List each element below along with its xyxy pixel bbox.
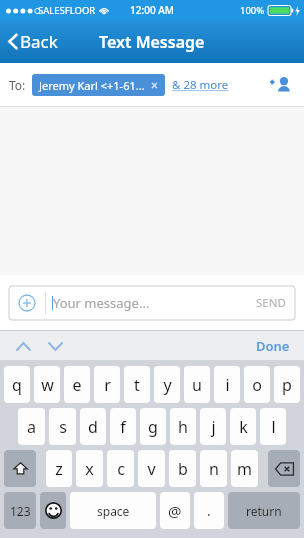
button[interactable]: Back — [0, 24, 68, 59]
button[interactable]: return — [228, 492, 300, 529]
button[interactable]: m — [231, 450, 258, 487]
button[interactable]: x — [76, 450, 103, 487]
staticText: h — [178, 416, 188, 438]
staticText: b — [178, 458, 188, 480]
staticText: y — [163, 374, 172, 396]
staticText: r — [104, 374, 111, 396]
staticText: o — [252, 374, 262, 396]
button[interactable]: Add recipient — [265, 70, 295, 100]
staticText: Back — [20, 30, 58, 53]
button[interactable]: l — [260, 408, 286, 445]
button[interactable]: & 28 more — [172, 72, 229, 98]
button[interactable]: e — [64, 366, 90, 403]
staticText: return — [246, 503, 282, 519]
staticText: SEND — [256, 295, 286, 311]
staticText: d — [88, 416, 98, 438]
button[interactable]: Done — [242, 332, 304, 360]
button[interactable]: i — [214, 366, 240, 403]
staticText: 12:00 AM — [130, 3, 174, 17]
staticText: l — [271, 416, 276, 438]
button[interactable]: s — [49, 408, 76, 445]
staticText: w — [41, 374, 54, 396]
staticText: k — [239, 416, 248, 438]
button[interactable]: o — [244, 366, 270, 403]
staticText: f — [120, 416, 126, 438]
staticText: . — [207, 501, 211, 520]
button[interactable]: Shift — [4, 450, 36, 487]
button[interactable]: y — [154, 366, 180, 403]
button[interactable]: Jeremy Karl <+1-61... — [32, 74, 165, 96]
staticText: To: — [9, 77, 26, 93]
staticText: 100% — [240, 4, 265, 17]
button[interactable]: p — [274, 366, 300, 403]
button[interactable]: Backspace — [268, 450, 300, 487]
staticText: & 28 more — [172, 77, 229, 93]
button[interactable]: q — [4, 366, 30, 403]
staticText: p — [282, 374, 292, 396]
button[interactable]: f — [110, 408, 136, 445]
button[interactable]: z — [46, 450, 72, 487]
staticText: v — [147, 458, 156, 480]
button[interactable]: u — [184, 366, 210, 403]
button[interactable]: g — [140, 408, 166, 445]
staticText: Your message... — [53, 294, 150, 312]
staticText: t — [134, 374, 140, 396]
staticText: Done — [256, 337, 290, 355]
staticText: Jeremy Karl <+1-61... — [39, 78, 145, 93]
staticText: space — [97, 503, 130, 519]
staticText: x — [85, 458, 94, 480]
staticText: e — [72, 374, 82, 396]
staticText: @ — [168, 501, 182, 521]
staticText: 123 — [10, 503, 31, 519]
staticText: z — [55, 458, 63, 480]
staticText: j — [211, 416, 216, 438]
staticText: × — [151, 77, 158, 93]
button[interactable]: space — [70, 492, 156, 529]
staticText: q — [12, 374, 22, 396]
staticText: s — [59, 416, 67, 438]
staticText: Text Message — [99, 31, 205, 53]
button[interactable]: d — [80, 408, 106, 445]
button[interactable]: @ — [160, 492, 190, 529]
staticText: n — [209, 458, 219, 480]
button[interactable]: v — [138, 450, 165, 487]
button[interactable]: c — [107, 450, 134, 487]
button[interactable]: r — [94, 366, 120, 403]
staticText: u — [192, 374, 202, 396]
button[interactable]: w — [34, 366, 60, 403]
button[interactable]: Next field — [42, 333, 68, 359]
button[interactable]: t — [124, 366, 150, 403]
button[interactable]: n — [200, 450, 227, 487]
button[interactable]: Emoji keyboard — [40, 492, 66, 529]
button[interactable]: h — [170, 408, 196, 445]
staticText: a — [27, 416, 36, 438]
button[interactable]: j — [200, 408, 226, 445]
button[interactable]: b — [169, 450, 196, 487]
button[interactable]: . — [194, 492, 224, 529]
staticText: i — [225, 374, 230, 396]
button[interactable]: 123 — [4, 492, 36, 529]
button[interactable]: a — [18, 408, 45, 445]
button[interactable]: k — [230, 408, 256, 445]
staticText: c — [117, 458, 125, 480]
button[interactable]: Add attachment — [9, 286, 45, 320]
staticText: m — [237, 458, 252, 480]
button[interactable]: Previous field — [10, 333, 36, 359]
staticText: SALESFLOOR — [38, 4, 96, 17]
button[interactable]: SEND — [247, 286, 295, 320]
staticText: g — [148, 416, 158, 438]
